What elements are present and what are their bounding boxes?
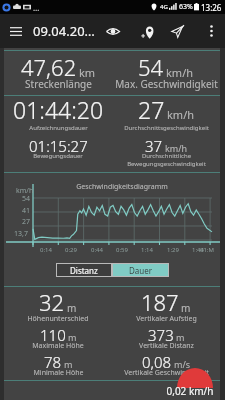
- staticText: km: [79, 65, 96, 80]
- staticText: 09.04.20…: [33, 22, 95, 40]
- staticText: 41: [22, 206, 31, 216]
- button[interactable]: Open navigation menu: [4, 19, 28, 43]
- staticText: 0,08: [142, 352, 172, 372]
- staticText: …: [33, 2, 40, 13]
- staticText: 1:29: [167, 246, 179, 254]
- staticText: Vertikale Geschwindigkeit: [124, 368, 209, 378]
- staticText: 1:14: [141, 246, 153, 254]
- staticText: 47,62: [21, 52, 77, 82]
- staticText: m: [68, 331, 77, 343]
- staticText: Streckenlänge: [25, 77, 92, 91]
- staticText: 373: [148, 325, 174, 345]
- staticText: 27: [138, 94, 165, 125]
- staticText: Dauer: [129, 265, 153, 276]
- staticText: 32: [39, 287, 65, 317]
- staticText: Max. Geschwindigkeit: [115, 77, 218, 91]
- button[interactable]: Distanz: [57, 264, 111, 276]
- staticText: 0,02 km/h: [166, 384, 214, 398]
- staticText: 01:M: [200, 246, 214, 254]
- staticText: m: [176, 331, 185, 343]
- staticText: m: [67, 301, 77, 315]
- staticText: 54: [22, 194, 31, 204]
- staticText: Vertikale Distanz: [139, 341, 194, 351]
- staticText: Höhenunterschied: [27, 314, 89, 324]
- staticText: 78: [44, 352, 62, 372]
- staticText: Durchschnittsgeschwindigkeit: [124, 124, 209, 132]
- button[interactable]: Dauer: [113, 264, 168, 276]
- staticText: 01:44:20: [13, 94, 104, 125]
- button[interactable]: Add waypoint: [136, 20, 159, 43]
- staticText: m: [64, 358, 73, 370]
- staticText: km/h: [166, 65, 194, 80]
- staticText: 27: [22, 217, 31, 227]
- staticText: Durchschnittliche Bewegungsgeschwindigke…: [127, 152, 206, 168]
- button[interactable]: Toggle visibility: [101, 20, 124, 43]
- staticText: 187: [141, 287, 179, 317]
- staticText: m/s: [174, 358, 191, 370]
- staticText: km/h: [167, 107, 195, 122]
- staticText: Minimale Höhe: [33, 368, 84, 378]
- staticText: 4G: [160, 3, 168, 11]
- button[interactable]: More options: [200, 20, 222, 42]
- staticText: 37: [145, 136, 163, 156]
- staticText: km/h: [165, 142, 188, 154]
- staticText: Vertikaler Aufstieg: [136, 314, 197, 324]
- staticText: Distanz: [70, 265, 98, 276]
- staticText: Maximale Höhe: [32, 341, 84, 351]
- staticText: m: [181, 301, 191, 315]
- staticText: 54: [138, 52, 164, 82]
- staticText: 13,7: [14, 229, 28, 239]
- staticText: 1:44: [192, 246, 204, 254]
- button[interactable]: Share track: [166, 20, 189, 43]
- staticText: 0:14: [40, 246, 52, 254]
- staticText: 13:26: [201, 2, 222, 13]
- staticText: 0:59: [116, 246, 128, 254]
- staticText: Geschwindigkeitsdiagramm: [76, 182, 168, 192]
- staticText: 0:29: [65, 246, 77, 254]
- staticText: 0:44: [91, 246, 103, 254]
- staticText: Aufzeichnungsdauer: [29, 124, 88, 132]
- staticText: 01:15:27: [29, 136, 88, 156]
- staticText: 110: [40, 325, 66, 345]
- staticText: km/h: [16, 186, 34, 196]
- staticText: Bewegungsdauer: [33, 152, 83, 160]
- staticText: 63%: [179, 2, 193, 12]
